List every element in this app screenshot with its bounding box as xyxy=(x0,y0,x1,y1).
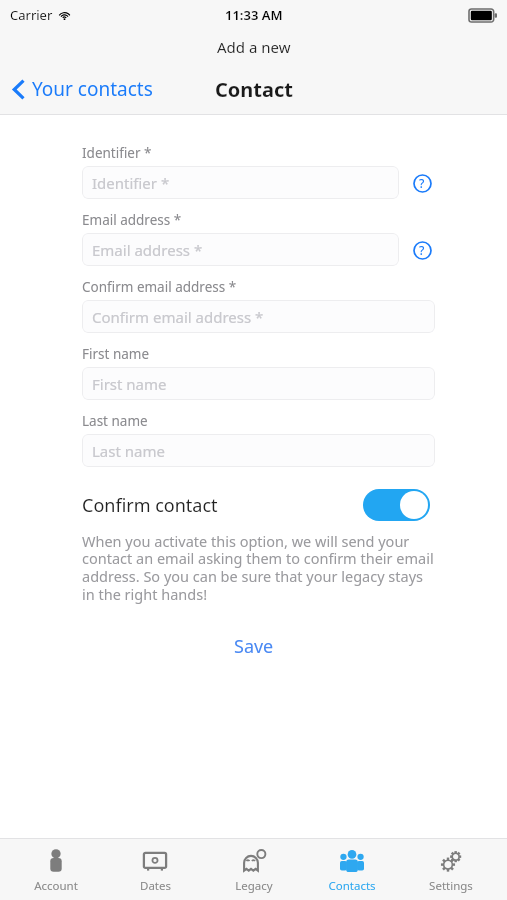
staticText: 11:33 AM xyxy=(225,6,283,24)
staticText: Last name xyxy=(82,412,148,430)
button[interactable]: Email address * xyxy=(82,233,399,266)
staticText: Save xyxy=(234,634,274,659)
button[interactable]: Contacts xyxy=(309,843,395,897)
button[interactable]: Dates xyxy=(112,843,198,897)
staticText: Identifier * xyxy=(92,173,170,193)
staticText: Contact xyxy=(215,76,293,103)
staticText: Identifier * xyxy=(82,144,152,162)
staticText: Carrier xyxy=(10,6,53,24)
staticText: Email address * xyxy=(92,240,203,260)
staticText: Contacts xyxy=(328,878,376,894)
button[interactable]: First name xyxy=(82,367,435,400)
button[interactable]: Legacy xyxy=(211,843,297,897)
staticText: First name xyxy=(82,345,150,363)
button[interactable]: Help xyxy=(409,237,435,263)
button[interactable]: Confirm contact toggle xyxy=(363,489,430,521)
staticText: Account xyxy=(34,878,78,894)
button[interactable]: Save xyxy=(208,628,300,665)
staticText: Email address * xyxy=(82,211,182,229)
button[interactable]: Identifier * xyxy=(82,166,399,199)
staticText: Dates xyxy=(140,878,171,894)
staticText: Settings xyxy=(429,878,473,894)
staticText: Your contacts xyxy=(32,76,153,102)
button[interactable]: Confirm email address * xyxy=(82,300,435,333)
staticText: Legacy xyxy=(235,878,273,894)
staticText: ? xyxy=(419,242,425,258)
staticText: First name xyxy=(92,374,167,394)
staticText: Last name xyxy=(92,441,165,461)
staticText: Confirm email address * xyxy=(82,278,237,296)
button[interactable]: Settings xyxy=(408,843,494,897)
staticText: Confirm email address * xyxy=(92,307,264,327)
staticText: Add a new xyxy=(217,37,291,57)
staticText: ? xyxy=(419,175,425,191)
button[interactable]: Account xyxy=(13,843,99,897)
staticText: Confirm contact xyxy=(82,493,218,518)
button[interactable]: Help xyxy=(409,170,435,196)
button[interactable]: Your contacts xyxy=(0,74,161,106)
button[interactable]: Last name xyxy=(82,434,435,467)
staticText: When you activate this option, we will s… xyxy=(82,531,435,604)
